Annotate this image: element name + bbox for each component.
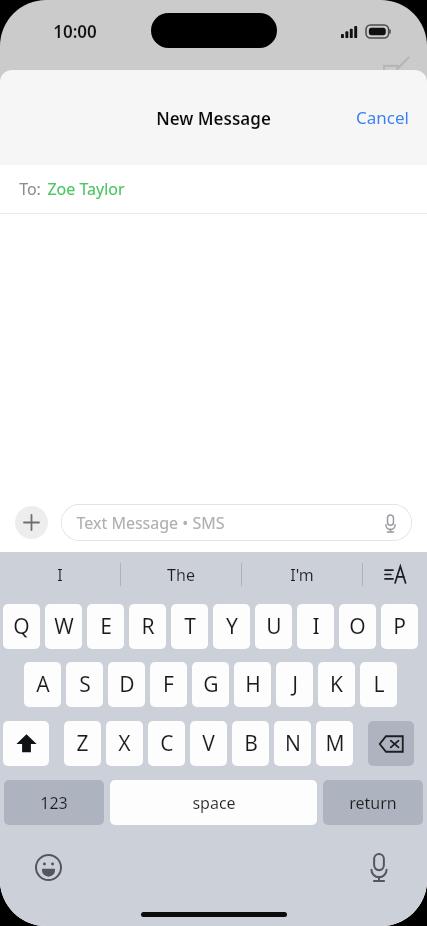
staticText: Text Message • SMS: [76, 512, 225, 534]
button[interactable]: L: [360, 662, 397, 707]
button[interactable]: Text formatting: [363, 552, 427, 597]
button[interactable]: D: [108, 662, 145, 707]
staticText: S: [79, 670, 91, 699]
button[interactable]: Cancel: [338, 92, 427, 143]
button[interactable]: G: [192, 662, 229, 707]
button[interactable]: R: [129, 604, 166, 649]
staticText: 123: [40, 792, 68, 814]
staticText: I: [57, 564, 63, 586]
staticText: Z: [76, 729, 89, 758]
button[interactable]: U: [255, 604, 292, 649]
staticText: The: [167, 564, 195, 586]
button[interactable]: B: [232, 721, 269, 766]
button[interactable]: J: [276, 662, 313, 707]
button[interactable]: V: [190, 721, 227, 766]
button[interactable]: Emoji keyboard: [32, 851, 64, 883]
button[interactable]: A: [24, 662, 61, 707]
staticText: Zoe Taylor: [47, 178, 125, 200]
button[interactable]: Z: [64, 721, 101, 766]
staticText: Q: [13, 612, 30, 641]
staticText: L: [373, 670, 385, 699]
staticText: E: [100, 612, 112, 641]
button[interactable]: return: [323, 780, 423, 825]
button[interactable]: space: [110, 780, 317, 825]
staticText: I: [312, 612, 320, 641]
button[interactable]: I: [0, 552, 120, 597]
button[interactable]: C: [148, 721, 185, 766]
button[interactable]: Q: [3, 604, 40, 649]
button[interactable]: N: [274, 721, 311, 766]
button[interactable]: K: [318, 662, 355, 707]
staticText: B: [244, 729, 258, 758]
button[interactable]: I'm: [242, 552, 362, 597]
button[interactable]: Add attachment: [15, 506, 48, 539]
staticText: N: [285, 729, 301, 758]
button[interactable]: O: [339, 604, 376, 649]
button[interactable]: W: [45, 604, 82, 649]
staticText: V: [202, 729, 215, 758]
button[interactable]: To:: [0, 165, 427, 213]
button[interactable]: S: [66, 662, 103, 707]
staticText: D: [119, 670, 135, 699]
staticText: R: [141, 612, 155, 641]
staticText: space: [192, 792, 236, 814]
staticText: C: [160, 729, 174, 758]
button[interactable]: Shift: [3, 721, 49, 766]
staticText: To:: [19, 178, 41, 200]
staticText: K: [330, 670, 343, 699]
button[interactable]: X: [106, 721, 143, 766]
button[interactable]: Text Message • SMS: [61, 504, 412, 541]
button[interactable]: F: [150, 662, 187, 707]
button[interactable]: Dictate message: [379, 512, 401, 534]
staticText: O: [349, 612, 366, 641]
button[interactable]: Y: [213, 604, 250, 649]
button[interactable]: T: [171, 604, 208, 649]
staticText: I'm: [290, 564, 314, 586]
staticText: H: [245, 670, 261, 699]
staticText: T: [184, 612, 196, 641]
button[interactable]: The: [121, 552, 241, 597]
staticText: F: [163, 670, 174, 699]
staticText: New Message: [156, 107, 271, 130]
staticText: return: [349, 792, 397, 814]
button[interactable]: E: [87, 604, 124, 649]
button[interactable]: H: [234, 662, 271, 707]
staticText: X: [118, 729, 131, 758]
staticText: M: [325, 729, 345, 758]
staticText: J: [292, 670, 298, 699]
button[interactable]: Delete: [368, 721, 414, 766]
button[interactable]: Dictation: [363, 851, 395, 883]
button[interactable]: M: [316, 721, 353, 766]
staticText: A: [36, 670, 50, 699]
staticText: Cancel: [356, 106, 409, 129]
staticText: U: [266, 612, 282, 641]
staticText: Y: [226, 612, 238, 641]
button[interactable]: I: [297, 604, 334, 649]
button[interactable]: 123: [4, 780, 104, 825]
staticText: G: [203, 670, 219, 699]
button[interactable]: P: [381, 604, 418, 649]
staticText: P: [393, 612, 406, 641]
staticText: W: [54, 612, 74, 641]
staticText: 10:00: [53, 20, 97, 43]
